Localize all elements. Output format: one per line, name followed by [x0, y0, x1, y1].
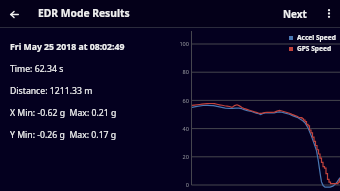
staticText: Distance: 1211.33 m [10, 85, 93, 97]
staticText: EDR Mode Results [38, 6, 130, 20]
staticText: Accel Speed [297, 33, 336, 42]
button[interactable]: Back [3, 0, 26, 28]
staticText: 80 [182, 68, 189, 76]
staticText: Fri May 25 2018 at 08:02:49 [10, 41, 125, 53]
staticText: Time: 62.34 s [10, 63, 64, 75]
staticText: GPS Speed [297, 44, 332, 53]
staticText: 40 [182, 125, 189, 133]
staticText: 100 [179, 40, 189, 48]
staticText: X Min: -0.62 g Max: 0.21 g [10, 107, 117, 119]
staticText: Next [283, 7, 307, 20]
staticText: Y Min: -0.26 g Max: 0.17 g [10, 129, 117, 141]
staticText: 0 [185, 181, 189, 189]
button[interactable]: Next [278, 0, 311, 28]
button[interactable]: More options [318, 0, 339, 28]
staticText: 20 [182, 153, 189, 161]
staticText: 60 [182, 97, 189, 105]
